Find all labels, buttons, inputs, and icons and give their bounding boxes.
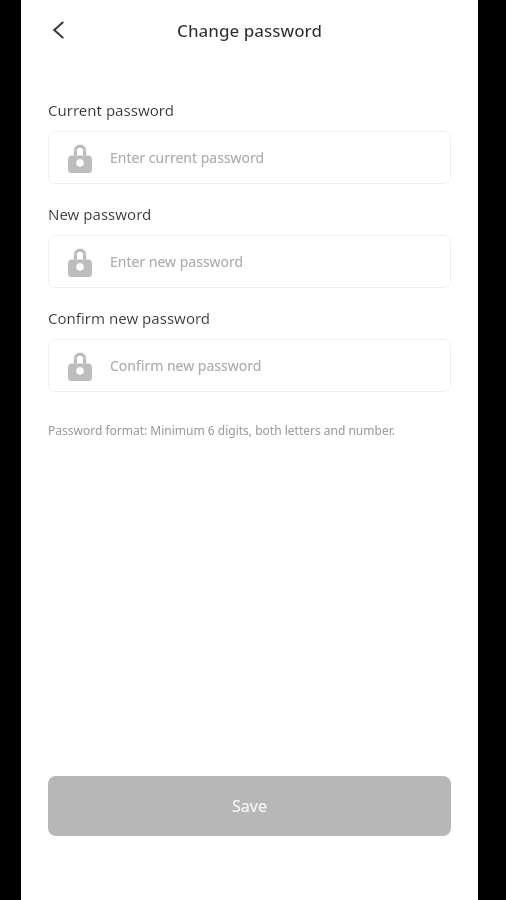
staticText: Current password: [48, 100, 174, 120]
staticText: Confirm new password: [48, 308, 211, 328]
staticText: New password: [48, 204, 152, 224]
staticText: Confirm new password: [110, 356, 262, 375]
staticText: Save: [232, 795, 267, 817]
staticText: Change password: [177, 19, 322, 42]
button[interactable]: Save: [48, 776, 451, 836]
button[interactable]: Confirm new password: [48, 339, 451, 392]
button[interactable]: Enter new password: [48, 235, 451, 288]
staticText: Enter new password: [110, 252, 244, 271]
staticText: Enter current password: [110, 148, 265, 167]
staticText: Password format: Minimum 6 digits, both …: [48, 422, 395, 438]
button[interactable]: Enter current password: [48, 131, 451, 184]
button[interactable]: Back: [39, 9, 81, 51]
